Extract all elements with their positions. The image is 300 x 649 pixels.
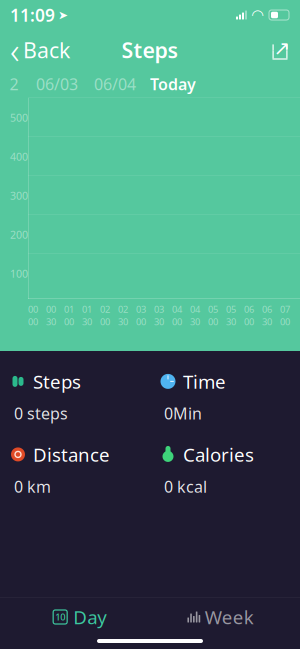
staticText: 04 <box>172 303 182 315</box>
button[interactable]: ‹ <box>0 30 80 70</box>
staticText: 30 <box>82 315 92 328</box>
staticText: 11:09 <box>10 3 55 26</box>
staticText: 03 <box>154 303 164 315</box>
staticText: Time <box>183 369 226 394</box>
staticText: 02 <box>100 303 110 315</box>
staticText: 30 <box>262 315 272 328</box>
staticText: ◠ <box>252 7 263 23</box>
staticText: Today <box>150 73 196 95</box>
staticText: 00 <box>244 315 254 328</box>
staticText: 00 <box>28 303 38 315</box>
button[interactable]: Today <box>144 71 202 97</box>
staticText: 00 <box>28 315 38 328</box>
button[interactable]: 06/03 <box>28 71 86 97</box>
staticText: 00 <box>100 315 110 328</box>
staticText: 30 <box>154 315 164 328</box>
staticText: 300 <box>10 188 28 203</box>
staticText: 200 <box>10 227 28 242</box>
staticText: 0 km <box>14 476 51 497</box>
staticText: 05 <box>208 303 218 315</box>
staticText: 00 <box>64 315 74 328</box>
staticText: ➤ <box>58 8 68 22</box>
staticText: 06/04 <box>94 73 136 95</box>
staticText: 10 <box>55 611 65 623</box>
staticText: 2 <box>9 73 18 95</box>
staticText: 04 <box>190 303 200 315</box>
staticText: Week <box>205 605 254 629</box>
staticText: 0 kcal <box>164 476 207 497</box>
staticText: Distance <box>33 442 110 467</box>
staticText: Back <box>23 36 70 64</box>
staticText: 100 <box>10 266 28 281</box>
staticText: 00 <box>136 315 146 328</box>
staticText: ↗ <box>273 37 290 59</box>
staticText: 30 <box>226 315 236 328</box>
staticText: 06 <box>262 303 272 315</box>
staticText: Day <box>73 605 107 629</box>
staticText: 400 <box>10 149 28 164</box>
staticText: 01 <box>64 303 74 315</box>
staticText: 06/03 <box>36 73 78 95</box>
staticText: 0 steps <box>14 403 68 424</box>
staticText: 02 <box>118 303 128 315</box>
staticText: 30 <box>46 315 56 328</box>
staticText: Steps <box>121 36 178 64</box>
staticText: 30 <box>190 315 200 328</box>
button[interactable]: 10 <box>25 600 135 634</box>
staticText: 07 <box>280 303 290 315</box>
staticText: 00 <box>208 315 218 328</box>
staticText: 00 <box>172 315 182 328</box>
staticText: 01 <box>82 303 92 315</box>
staticText: 0Min <box>164 403 202 424</box>
staticText: Calories <box>183 442 254 467</box>
staticText: 05 <box>226 303 236 315</box>
staticText: 30 <box>118 315 128 328</box>
staticText: 06 <box>244 303 254 315</box>
button[interactable]: 2 <box>0 71 28 97</box>
button[interactable]: 06/04 <box>86 71 144 97</box>
staticText: 00 <box>46 303 56 315</box>
button[interactable]: Share <box>260 30 300 70</box>
staticText: ‹ <box>10 26 20 74</box>
staticText: 00 <box>280 315 290 328</box>
staticText: Steps <box>33 369 81 394</box>
button[interactable]: Week <box>165 600 275 634</box>
staticText: 03 <box>136 303 146 315</box>
staticText: 500 <box>10 110 28 125</box>
